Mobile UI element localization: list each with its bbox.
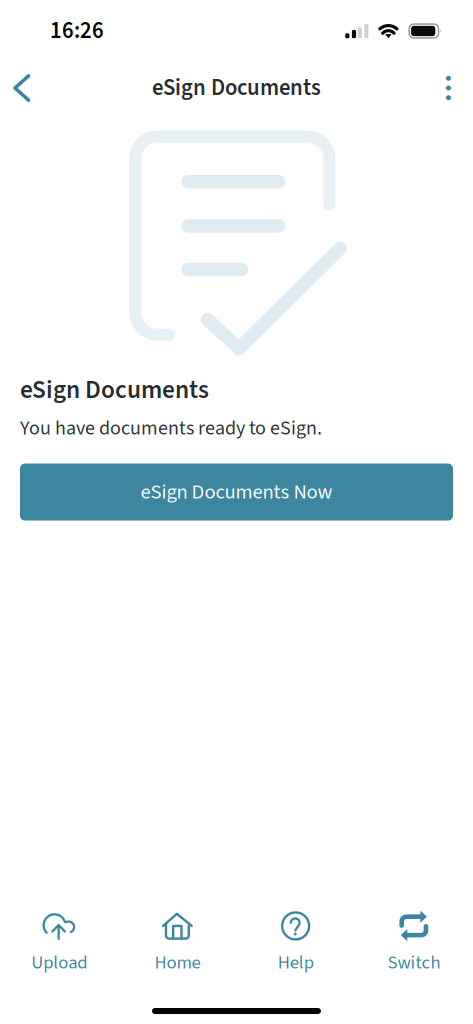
staticText: Help	[278, 949, 314, 976]
button[interactable]: Help	[236, 912, 355, 976]
button[interactable]: Back	[0, 61, 46, 115]
staticText: You have documents ready to eSign.	[20, 414, 322, 443]
staticText: eSign Documents	[20, 372, 209, 408]
button[interactable]: Switch	[355, 912, 473, 976]
staticText: Home	[154, 949, 200, 976]
staticText: Upload	[31, 949, 87, 976]
button[interactable]: Upload	[0, 912, 118, 976]
staticText: eSign Documents Now	[140, 477, 332, 507]
button[interactable]: eSign Documents Now	[20, 464, 453, 521]
button[interactable]: More options	[428, 62, 473, 114]
staticText: eSign Documents	[152, 72, 321, 104]
staticText: 16:26	[50, 15, 104, 47]
staticText: Switch	[387, 949, 440, 976]
button[interactable]: Home	[118, 912, 236, 976]
